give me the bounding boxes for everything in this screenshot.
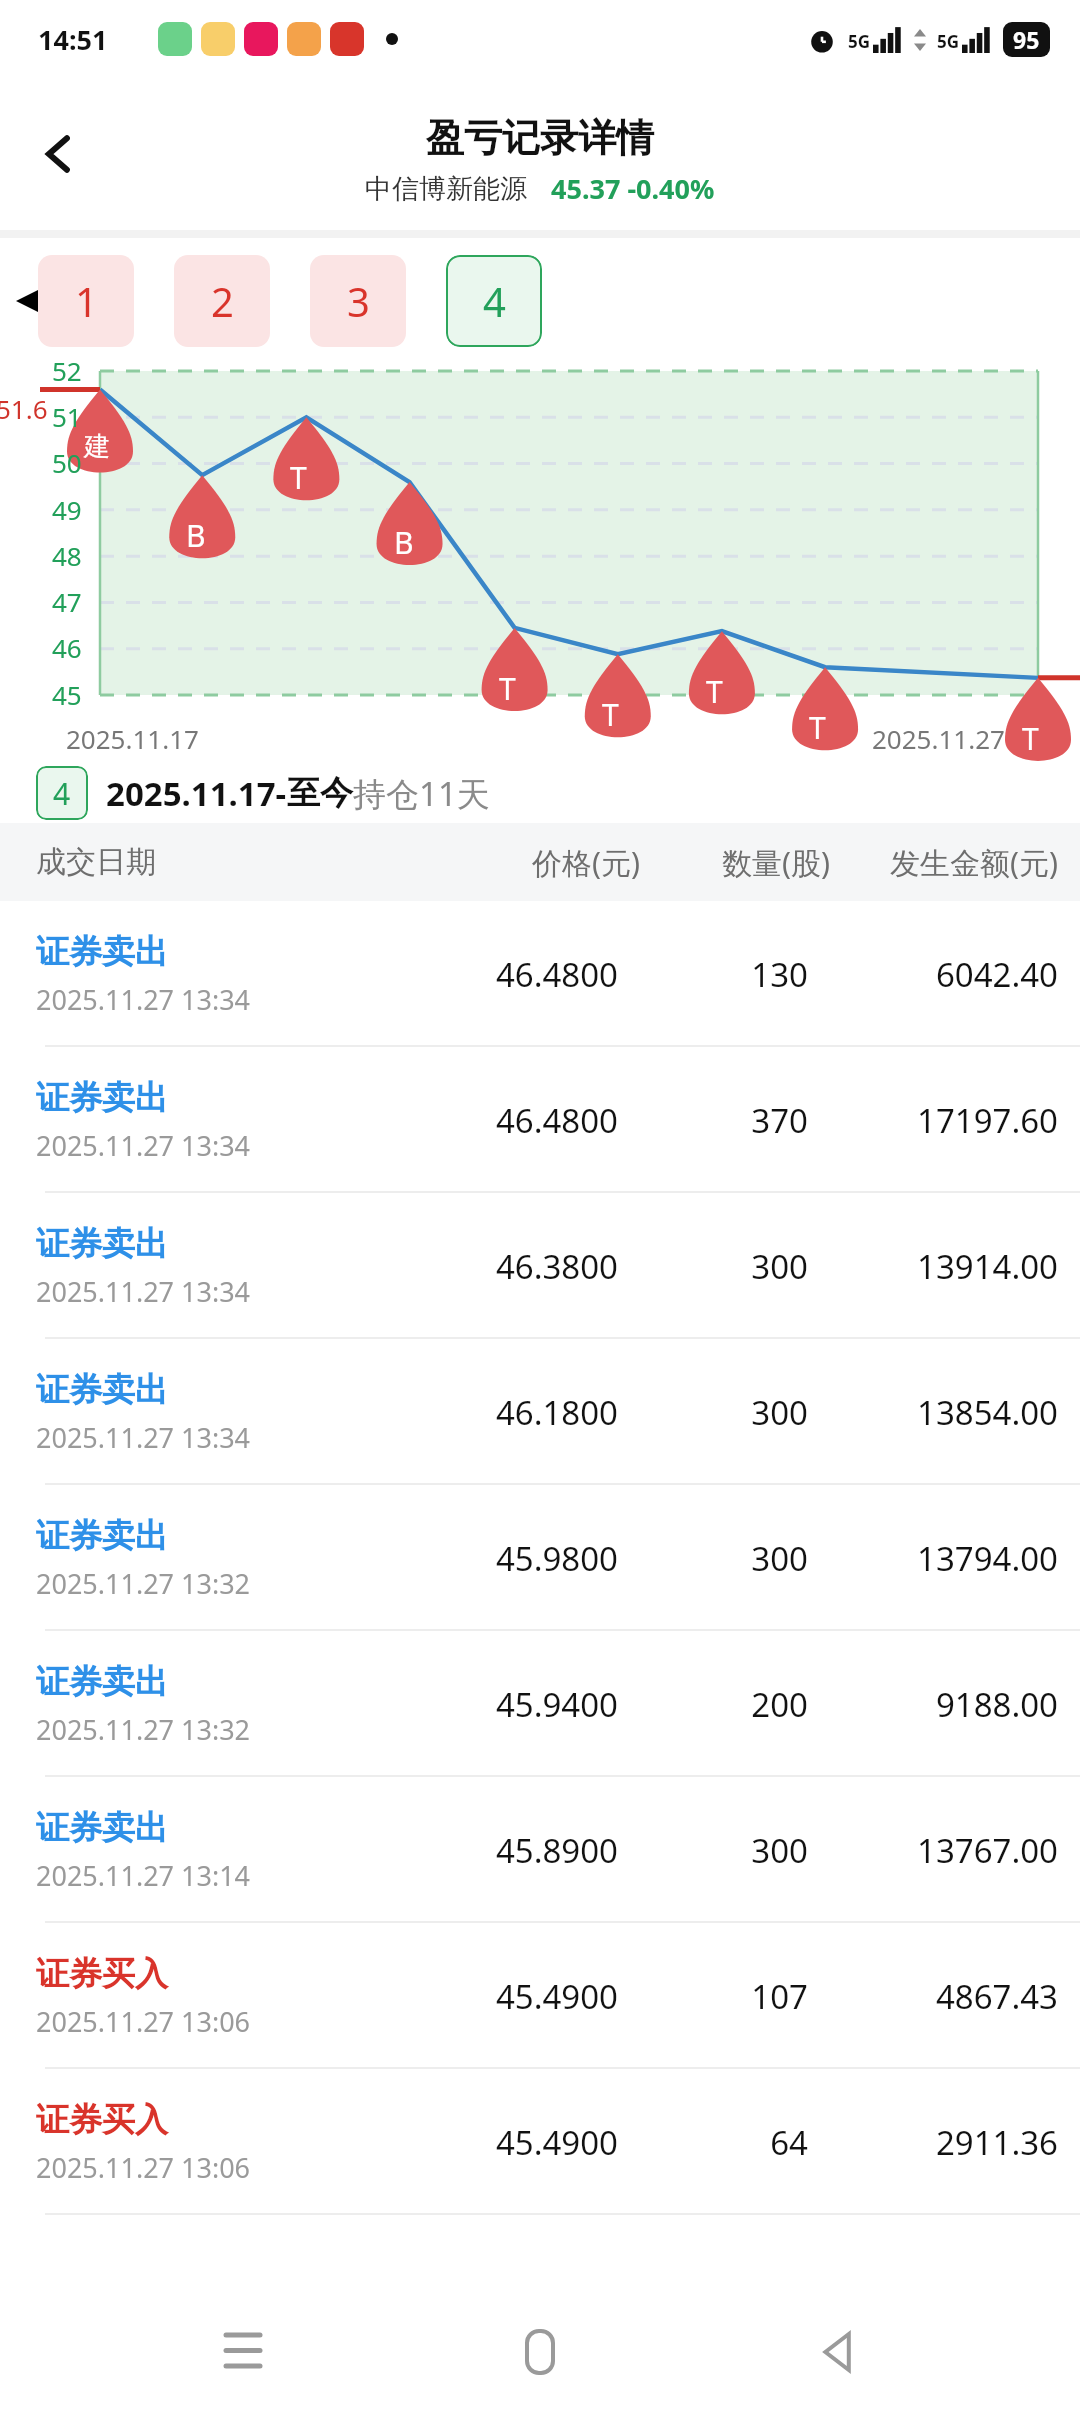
staticText: 14:51: [38, 21, 108, 58]
staticText: 价格(元): [440, 842, 640, 883]
staticText: 2025.11.27 13:06: [36, 2003, 251, 2040]
staticText: 51: [52, 399, 82, 434]
staticText: 51.6: [0, 391, 48, 426]
button[interactable]: Back: [783, 2297, 893, 2407]
staticText: 2025.11.27 13:06: [36, 2149, 251, 2186]
staticText: 建: [84, 430, 110, 463]
staticText: 45.9400: [418, 1682, 618, 1727]
staticText: T: [602, 694, 619, 735]
staticText: 50: [52, 445, 82, 480]
staticText: 证券买入: [36, 2099, 168, 2141]
staticText: 证券卖出: [36, 1077, 168, 1119]
button[interactable]: 证券卖出: [0, 901, 1080, 1047]
staticText: 48: [52, 538, 82, 573]
staticText: 13794.00: [808, 1536, 1058, 1581]
staticText: 45.9800: [418, 1536, 618, 1581]
staticText: T: [499, 668, 516, 709]
staticText: 2025.11.27 13:32: [36, 1565, 251, 1602]
staticText: 证券买入: [36, 1953, 168, 1995]
staticText: 成交日期: [36, 843, 440, 881]
button[interactable]: Back: [22, 117, 96, 191]
staticText: 45.4900: [418, 2120, 618, 2165]
button[interactable]: 证券买入: [0, 2069, 1080, 2215]
staticText: 45: [52, 677, 82, 712]
staticText: B: [394, 522, 414, 563]
staticText: 证券卖出: [36, 931, 168, 973]
staticText: 证券卖出: [36, 1369, 168, 1411]
button[interactable]: Home: [485, 2297, 595, 2407]
staticText: 95: [1013, 24, 1040, 55]
staticText: 45.4900: [418, 1974, 618, 2019]
staticText: 2025.11.27 13:32: [36, 1711, 251, 1748]
button[interactable]: 证券卖出: [0, 1339, 1080, 1485]
staticText: 2911.36: [808, 2120, 1058, 2165]
staticText: B: [186, 515, 206, 556]
staticText: 1: [75, 274, 98, 328]
staticText: 证券卖出: [36, 1807, 168, 1849]
staticText: 证券卖出: [36, 1223, 168, 1265]
button[interactable]: 证券卖出: [0, 1631, 1080, 1777]
staticText: 13914.00: [808, 1244, 1058, 1289]
staticText: 数量(股): [640, 842, 830, 883]
staticText: 2025.11.27 13:34: [36, 1127, 251, 1164]
staticText: 4: [483, 274, 506, 328]
staticText: T: [290, 457, 307, 498]
staticText: 持仓11天: [353, 771, 490, 816]
staticText: 13767.00: [808, 1828, 1058, 1873]
staticText: 300: [618, 1828, 808, 1873]
button[interactable]: 证券卖出: [0, 1485, 1080, 1631]
staticText: 45.37 -0.40%: [551, 170, 715, 207]
staticText: 4867.43: [808, 1974, 1058, 2019]
staticText: 107: [618, 1974, 808, 2019]
staticText: 证券卖出: [36, 1661, 168, 1703]
staticText: 至今: [287, 772, 353, 814]
button[interactable]: 1: [38, 255, 134, 347]
staticText: T: [809, 707, 826, 748]
staticText: 证券卖出: [36, 1515, 168, 1557]
staticText: 6042.40: [808, 952, 1058, 997]
staticText: 47: [52, 584, 82, 619]
staticText: 13854.00: [808, 1390, 1058, 1435]
staticText: 49: [52, 492, 82, 527]
staticText: 130: [618, 952, 808, 997]
button[interactable]: 3: [310, 255, 406, 347]
staticText: 46.4800: [418, 1098, 618, 1143]
staticText: 300: [618, 1390, 808, 1435]
staticText: 2025.11.27 13:14: [36, 1857, 251, 1894]
staticText: T: [1022, 718, 1039, 759]
staticText: 64: [618, 2120, 808, 2165]
staticText: 2025.11.27 13:34: [36, 1419, 251, 1456]
staticText: 46.4800: [418, 952, 618, 997]
staticText: 300: [618, 1244, 808, 1289]
staticText: 45.8900: [418, 1828, 618, 1873]
staticText: 中信博新能源: [365, 172, 527, 206]
staticText: 5G: [848, 30, 871, 53]
button[interactable]: 4: [446, 255, 542, 347]
staticText: 盈亏记录详情: [426, 114, 654, 162]
staticText: 2025.11.17-: [106, 771, 287, 816]
button[interactable]: 证券卖出: [0, 1047, 1080, 1193]
staticText: 46.3800: [418, 1244, 618, 1289]
staticText: 200: [618, 1682, 808, 1727]
staticText: 5G: [937, 30, 960, 53]
staticText: 4: [53, 773, 71, 814]
staticText: 3: [347, 274, 370, 328]
staticText: 300: [618, 1536, 808, 1581]
staticText: 52: [52, 353, 82, 388]
staticText: 2025.11.27 13:34: [36, 1273, 251, 1310]
staticText: 9188.00: [808, 1682, 1058, 1727]
staticText: 2025.11.27 13:34: [36, 981, 251, 1018]
button[interactable]: 证券卖出: [0, 1193, 1080, 1339]
staticText: T: [706, 671, 723, 712]
staticText: 46.1800: [418, 1390, 618, 1435]
button[interactable]: 2: [174, 255, 270, 347]
staticText: 2: [211, 274, 234, 328]
button[interactable]: Recents: [188, 2297, 298, 2407]
staticText: 2025.11.27: [872, 721, 1005, 756]
staticText: 2025.11.17: [66, 721, 199, 756]
staticText: 370: [618, 1098, 808, 1143]
button[interactable]: 证券卖出: [0, 1777, 1080, 1923]
button[interactable]: 证券买入: [0, 1923, 1080, 2069]
staticText: 17197.60: [808, 1098, 1058, 1143]
staticText: 发生金额(元): [830, 842, 1058, 883]
